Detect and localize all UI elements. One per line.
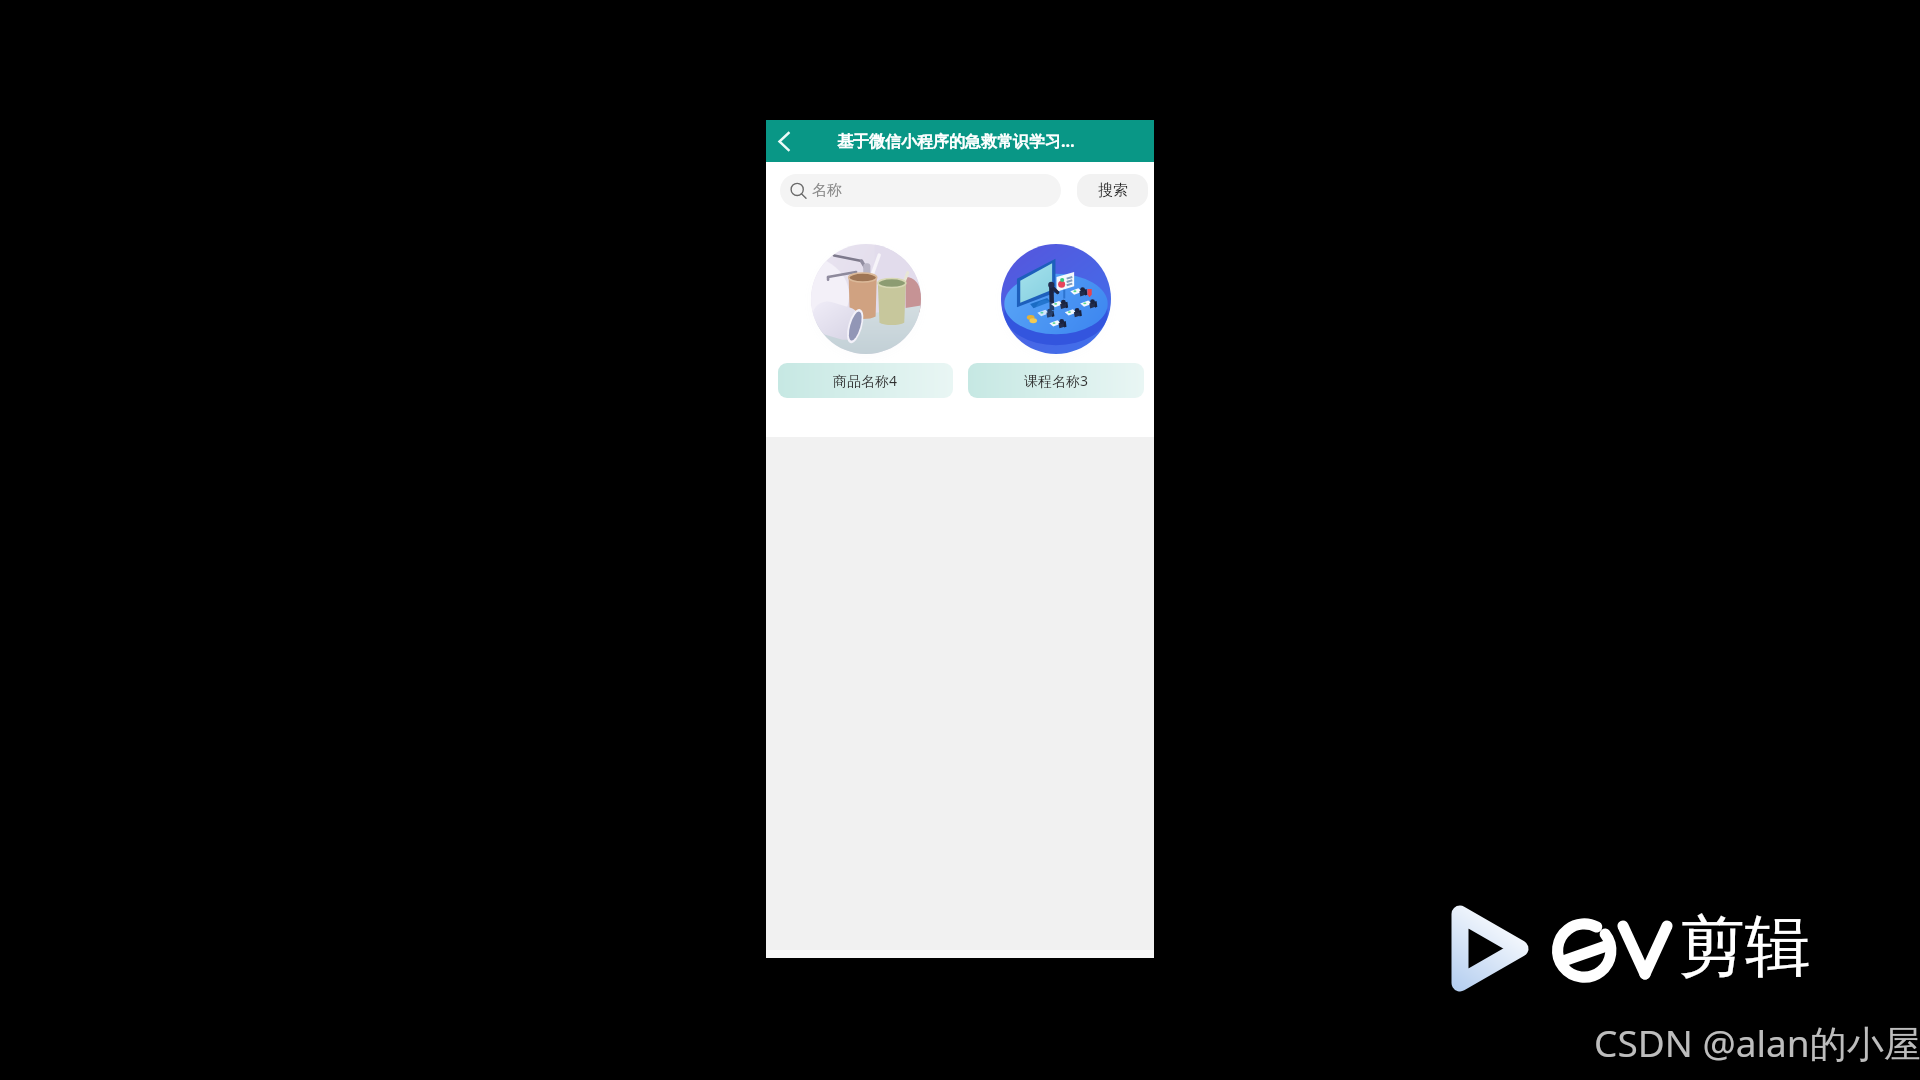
staticText: 搜索 bbox=[1098, 181, 1128, 200]
button[interactable]: Back bbox=[766, 120, 804, 162]
staticText: 名称 bbox=[812, 181, 842, 200]
staticText: 商品名称4 bbox=[833, 371, 898, 390]
staticText: CSDN @alan的小屋 bbox=[1594, 1017, 1920, 1068]
button[interactable]: 课程名称3 bbox=[968, 237, 1144, 398]
staticText: 基于微信小程序的急救常识学习… bbox=[837, 130, 1075, 152]
button[interactable]: 商品名称4 bbox=[778, 237, 953, 398]
button[interactable]: 名称 bbox=[780, 174, 1061, 207]
staticText: 剪辑 bbox=[1679, 905, 1811, 988]
staticText: 课程名称3 bbox=[1024, 371, 1089, 390]
button[interactable]: 搜索 bbox=[1077, 174, 1148, 207]
